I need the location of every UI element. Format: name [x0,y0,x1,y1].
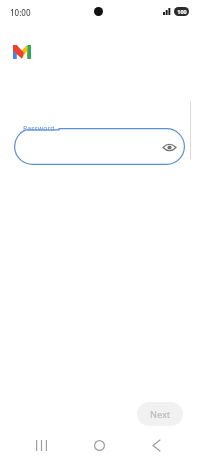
staticText: Next [150,408,171,420]
button[interactable]: Password [14,128,185,165]
button[interactable]: Home [82,430,116,460]
button[interactable]: Next [137,402,183,426]
staticText: Password [23,124,55,134]
staticText: 10:00 [10,7,31,18]
button[interactable]: Back [139,430,173,460]
button[interactable]: Show password [160,138,178,156]
button[interactable]: Recent apps [24,430,58,460]
staticText: 100 [177,8,187,15]
